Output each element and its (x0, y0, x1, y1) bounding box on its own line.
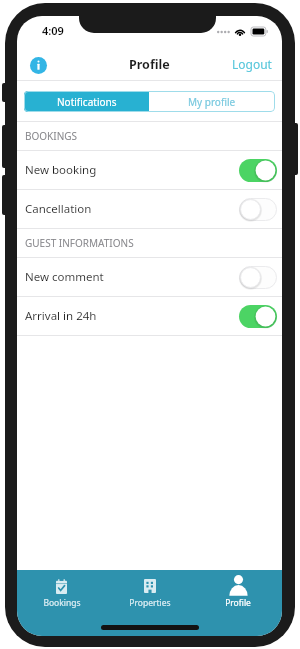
button[interactable]: Cancellation (17, 190, 282, 228)
staticText: GUEST INFORMATIONS (25, 236, 134, 250)
staticText: Profile (129, 56, 170, 73)
button[interactable]: Properties (106, 575, 194, 609)
staticText: New booking (25, 162, 97, 178)
button[interactable]: Notifications (24, 91, 149, 112)
button[interactable]: Bookings (17, 575, 106, 609)
button[interactable]: Info (25, 52, 51, 78)
staticText: Profile (225, 597, 251, 609)
staticText: Bookings (43, 597, 81, 609)
button[interactable] (239, 305, 277, 328)
staticText: Properties (129, 597, 171, 609)
staticText: New comment (25, 269, 104, 285)
button[interactable] (239, 159, 277, 182)
staticText: Cancellation (25, 201, 92, 217)
button[interactable]: New booking (17, 151, 282, 189)
staticText: BOOKINGS (25, 129, 78, 143)
button[interactable] (239, 198, 277, 221)
button[interactable]: New comment (17, 258, 282, 296)
button[interactable]: Arrival in 24h (17, 297, 282, 335)
staticText: 4:09 (42, 23, 64, 38)
staticText: Logout (232, 56, 272, 72)
staticText: Arrival in 24h (25, 308, 97, 324)
staticText: Notifications (57, 95, 117, 109)
staticText: My profile (188, 95, 236, 109)
button[interactable] (239, 266, 277, 289)
button[interactable]: Logout (228, 51, 276, 77)
button[interactable]: My profile (149, 91, 275, 112)
button[interactable]: Profile (194, 575, 282, 609)
